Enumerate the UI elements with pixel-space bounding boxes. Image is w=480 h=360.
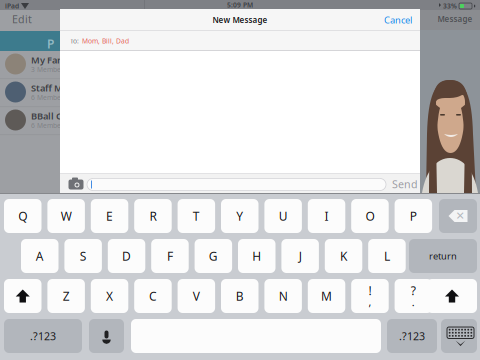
button[interactable]: M (308, 279, 345, 313)
button[interactable]: My Fam (0, 51, 60, 79)
button[interactable]: .?123 (387, 319, 437, 353)
staticText: iPad (5, 2, 19, 10)
button[interactable]: Cancel (372, 12, 412, 28)
staticText: A (36, 248, 44, 264)
staticText: × (456, 205, 464, 225)
staticText: Staff Me (31, 82, 68, 94)
staticText: Y (236, 208, 243, 224)
staticText: M (321, 288, 332, 304)
button[interactable]: T (178, 199, 215, 233)
staticText: P (410, 208, 417, 224)
button[interactable]: X (91, 279, 128, 313)
button[interactable]: Y (221, 199, 258, 233)
staticText: Cancel (384, 14, 412, 26)
button[interactable]: Send (392, 177, 418, 191)
staticText: Mom, Bill, Dad (82, 36, 129, 45)
staticText: B (236, 288, 244, 304)
staticText: F (167, 248, 173, 264)
staticText: 6 Members (31, 93, 67, 102)
button[interactable]: G (195, 239, 232, 273)
button[interactable]: Q (4, 199, 41, 233)
staticText: G (209, 248, 218, 264)
button[interactable]: Shift (427, 279, 477, 313)
button[interactable]: return (409, 239, 477, 273)
staticText: K (340, 248, 347, 264)
button[interactable]: .?123 (4, 319, 82, 353)
button[interactable]: N (264, 279, 302, 313)
staticText: ! (368, 282, 371, 298)
button[interactable]: J (281, 239, 319, 273)
staticText: P (47, 36, 54, 52)
staticText: 5:09 PM (227, 0, 253, 9)
button[interactable]: C (134, 279, 172, 313)
staticText: .?123 (30, 329, 56, 343)
staticText: R (149, 208, 156, 224)
button[interactable]: W (47, 199, 85, 233)
button[interactable]: V (178, 279, 215, 313)
staticText: E (106, 208, 113, 224)
staticText: T (193, 208, 200, 224)
button[interactable]: D (108, 239, 145, 273)
button[interactable]: R (134, 199, 172, 233)
staticText: Q (18, 208, 27, 224)
staticText: ? (411, 282, 416, 298)
staticText: return (429, 250, 457, 262)
button[interactable]: Shift (4, 279, 41, 313)
staticText: , (368, 295, 371, 309)
button[interactable] (395, 279, 432, 313)
staticText: To: (70, 36, 79, 45)
button[interactable]: F (151, 239, 189, 273)
button[interactable]: Z (47, 279, 85, 313)
button[interactable]: Staff Me (0, 79, 60, 107)
button[interactable]: Hide keyboard (441, 319, 477, 353)
button[interactable]: O (351, 199, 389, 233)
button[interactable]: P (395, 199, 432, 233)
button[interactable]: L (368, 239, 406, 273)
staticText: New Message (212, 15, 267, 25)
staticText: U (279, 208, 288, 224)
staticText: C (149, 288, 157, 304)
button[interactable]: I (308, 199, 345, 233)
staticText: 33% (443, 2, 457, 10)
button[interactable]: E (91, 199, 128, 233)
staticText: O (365, 208, 374, 224)
staticText: S (80, 248, 87, 264)
button[interactable]: S (64, 239, 102, 273)
staticText: My Fam (31, 54, 66, 66)
staticText: Edit (12, 12, 32, 26)
button[interactable]: K (325, 239, 362, 273)
staticText: H (252, 248, 261, 264)
button[interactable]: Delete (439, 199, 477, 233)
button[interactable]: A (21, 239, 58, 273)
staticText: 3 Members (31, 65, 67, 74)
staticText: 6 Members (31, 121, 67, 130)
staticText: L (384, 248, 390, 264)
staticText: V (193, 288, 200, 304)
staticText: Send (392, 177, 418, 191)
staticText: I (325, 208, 329, 224)
staticText: .?123 (399, 329, 425, 343)
staticText: Z (63, 288, 70, 304)
staticText: X (106, 288, 113, 304)
button[interactable]: Take photo (68, 178, 84, 191)
staticText: N (279, 288, 288, 304)
button[interactable]: Dictate (89, 319, 124, 353)
staticText: . (412, 295, 415, 309)
staticText: BBall Cr (31, 110, 66, 122)
button[interactable]: H (238, 239, 275, 273)
staticText: D (122, 248, 131, 264)
staticText: Message (437, 14, 472, 24)
button[interactable]: B (221, 279, 258, 313)
button[interactable]: Edit (12, 13, 42, 25)
staticText: J (299, 248, 302, 264)
button[interactable] (351, 279, 389, 313)
staticText: W (61, 208, 72, 224)
button[interactable]: BBall Cr (0, 107, 60, 135)
button[interactable]: U (264, 199, 302, 233)
